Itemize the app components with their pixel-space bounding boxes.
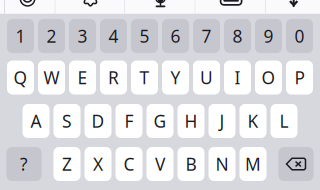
button[interactable]: A [22,104,49,138]
button[interactable]: S [53,104,80,138]
staticText: 5 [139,24,149,47]
button[interactable]: Audio [125,0,195,13]
button[interactable]: Delete [278,147,313,181]
button[interactable]: U [193,60,220,94]
staticText: A [30,109,41,132]
staticText: X [93,152,103,175]
button[interactable]: M [239,147,266,181]
button[interactable]: 8 [224,19,251,53]
staticText: I [234,66,240,89]
staticText: W [43,66,59,89]
staticText: Z [62,152,72,175]
staticText: 4 [108,24,118,47]
staticText: T [139,66,149,89]
button[interactable]: Q [7,60,34,94]
button[interactable]: 0 [286,19,313,53]
staticText: Y [170,66,180,89]
button[interactable]: 6 [162,19,189,53]
button[interactable]: C [115,147,142,181]
staticText: 7 [201,24,211,47]
button[interactable]: 2 [38,19,65,53]
button[interactable]: ? [6,147,41,181]
button[interactable]: 4 [100,19,127,53]
button[interactable]: X [84,147,111,181]
button[interactable]: T [131,60,158,94]
staticText: 6 [170,24,180,47]
staticText: 0 [294,24,304,47]
staticText: L [279,109,288,132]
button[interactable]: D [84,104,111,138]
button[interactable]: R [100,60,127,94]
button[interactable]: W [38,60,65,94]
staticText: P [294,66,304,89]
button[interactable]: 7 [193,19,220,53]
button[interactable]: P [286,60,313,94]
button[interactable]: E [69,60,96,94]
button[interactable]: 3 [69,19,96,53]
staticText: J [219,109,224,132]
staticText: 8 [232,24,242,47]
staticText: F [124,109,133,132]
staticText: 9 [263,24,273,47]
staticText: 2 [46,24,56,47]
staticText: ? [20,152,28,175]
staticText: 1 [15,24,25,47]
staticText: 3 [77,24,87,47]
staticText: V [155,152,165,175]
button[interactable]: O [255,60,282,94]
button[interactable]: B [177,147,204,181]
button[interactable]: I [224,60,251,94]
staticText: C [123,152,134,175]
button[interactable]: Y [162,60,189,94]
staticText: O [261,66,275,89]
button[interactable]: F [115,104,142,138]
staticText: S [62,109,72,132]
staticText: N [215,152,228,175]
staticText: R [108,66,119,89]
button[interactable]: H [177,104,204,138]
button[interactable]: Stickers [56,0,124,13]
staticText: E [77,66,87,89]
button[interactable]: 5 [131,19,158,53]
button[interactable]: Photos [196,0,265,13]
staticText: K [247,109,258,132]
button[interactable]: V [146,147,173,181]
button[interactable]: K [239,104,266,138]
staticText: Q [13,66,27,89]
staticText: H [184,109,197,132]
button[interactable]: J [208,104,235,138]
staticText: U [200,66,213,89]
button[interactable]: Z [53,147,80,181]
staticText: D [91,109,104,132]
button[interactable]: 1 [7,19,34,53]
staticText: M [245,152,261,175]
staticText: B [185,152,196,175]
button[interactable]: G [146,104,173,138]
button[interactable]: N [208,147,235,181]
button[interactable]: 9 [255,19,282,53]
button[interactable]: L [270,104,297,138]
button[interactable]: Hide Keyboard [266,0,320,13]
staticText: G [153,109,166,132]
button[interactable]: Emoji [5,0,55,13]
